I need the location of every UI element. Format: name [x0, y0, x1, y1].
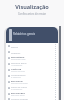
button[interactable]: Fluxo de caixa	[6, 85, 58, 91]
button[interactable]: Mais opções	[54, 79, 57, 85]
staticText: período completo	[11, 82, 28, 85]
button[interactable]: Mais opções	[54, 61, 57, 67]
staticText: março de 2024	[11, 70, 25, 73]
button[interactable]: Mais opções	[54, 67, 57, 73]
button[interactable]: Mais opções	[54, 91, 57, 97]
staticText: 12 registros	[11, 64, 23, 67]
staticText: Confira antes de enviar	[0, 12, 64, 16]
button[interactable]: ANÁLISE	[6, 67, 58, 73]
staticText: BALANÇO	[11, 79, 23, 82]
button[interactable]: Mais opções	[54, 43, 57, 49]
button[interactable]: Menu	[9, 29, 12, 41]
staticText: Contas a pagar	[11, 97, 28, 100]
staticText: 24 registros	[11, 88, 23, 91]
button[interactable]: BALANCETE	[6, 91, 58, 97]
staticText: ANÁLISE	[11, 67, 22, 70]
staticText: atualizado hoje	[11, 58, 26, 61]
button[interactable]: Mais opções	[54, 85, 57, 91]
button[interactable]: BALANÇO	[6, 79, 58, 85]
staticText: BALANCETE	[11, 91, 25, 94]
staticText: Visualização	[0, 3, 64, 11]
button[interactable]: Mais opções	[54, 49, 57, 55]
staticText: Filtros	[11, 45, 18, 48]
staticText: Resumo geral	[11, 61, 27, 64]
staticText: Ordenar	[11, 51, 21, 54]
button[interactable]: Resumo geral	[6, 61, 58, 67]
staticText: Fluxo de caixa	[11, 85, 27, 88]
button[interactable]: RELATÓRIO	[6, 55, 58, 61]
button[interactable]: Filtros	[6, 43, 58, 49]
button[interactable]: Mais opções	[54, 55, 57, 61]
staticText: 8 registros	[11, 76, 21, 79]
button[interactable]: Comparativo	[6, 73, 58, 79]
button[interactable]: Contas a pagar	[6, 97, 58, 100]
button[interactable]: Mais opções	[54, 73, 57, 79]
button[interactable]: Mais opções	[54, 97, 57, 100]
button[interactable]: Ordenar	[6, 49, 58, 55]
staticText: RELATÓRIO	[11, 55, 25, 58]
staticText: exercício atual	[11, 94, 25, 97]
staticText: Relatórios gerais	[13, 32, 35, 36]
staticText: Comparativo	[11, 73, 26, 76]
